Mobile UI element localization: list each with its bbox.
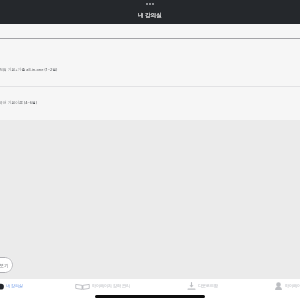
- button[interactable]: 다운로드함: [156, 279, 248, 292]
- staticText: 강의 전체보기: [0, 262, 9, 268]
- staticText: 국어 기본이론 (4~6월): [0, 100, 37, 105]
- staticText: 헌법 기본+기출 all-in-one (1~2월): [0, 67, 58, 72]
- button[interactable]: 내 강의실: [0, 279, 57, 292]
- button[interactable]: 강의 전체보기: [0, 257, 13, 273]
- staticText: 내 강의실: [6, 283, 24, 288]
- staticText: 마이페이지: [285, 283, 300, 288]
- staticText: 마이페이지 강좌 관리: [92, 283, 131, 288]
- button[interactable]: 헌법 기본+기출 all-in-one (1~2월): [0, 39, 300, 86]
- staticText: 다운로드함: [198, 283, 218, 288]
- button[interactable]: 국어 기본이론 (4~6월): [0, 87, 300, 120]
- staticText: 내 강의실: [138, 11, 162, 19]
- button[interactable]: 마이페이지: [243, 279, 300, 292]
- button[interactable]: 마이페이지 강좌 관리: [57, 279, 149, 292]
